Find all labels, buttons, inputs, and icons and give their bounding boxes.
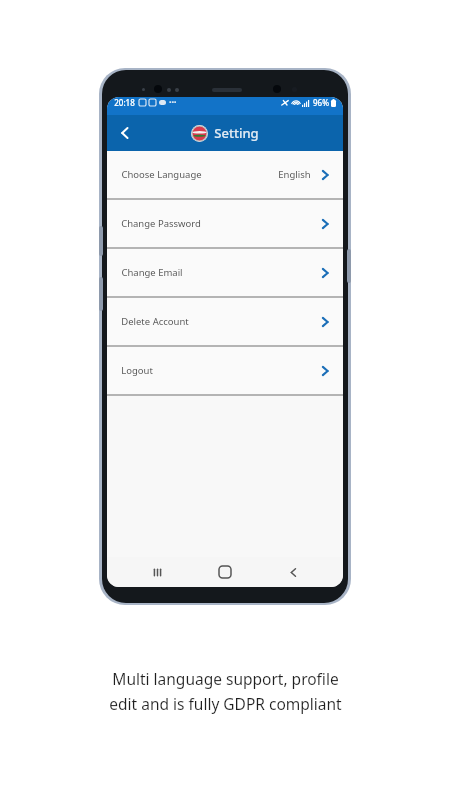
- staticText: Multi language support, profile: [112, 668, 339, 689]
- staticText: Logout: [121, 364, 153, 377]
- button[interactable]: Recents: [139, 557, 175, 587]
- button[interactable]: Choose Language: [107, 151, 343, 198]
- staticText: Delete Account: [121, 315, 189, 328]
- button[interactable]: Back: [275, 557, 311, 587]
- staticText: 20:18: [114, 97, 135, 108]
- button[interactable]: Back: [111, 119, 139, 147]
- button[interactable]: Change Email: [107, 249, 343, 296]
- staticText: Setting: [214, 124, 259, 142]
- button[interactable]: Home: [207, 557, 243, 587]
- button[interactable]: Logout: [107, 347, 343, 394]
- button[interactable]: Change Password: [107, 200, 343, 247]
- button[interactable]: Delete Account: [107, 298, 343, 345]
- staticText: English: [278, 168, 311, 181]
- staticText: ⋯: [169, 98, 177, 107]
- staticText: edit and is fully GDPR compliant: [109, 693, 342, 714]
- staticText: Change Email: [121, 266, 183, 279]
- staticText: Choose Language: [121, 168, 202, 181]
- staticText: 96%: [313, 97, 329, 108]
- staticText: Change Password: [121, 217, 201, 230]
